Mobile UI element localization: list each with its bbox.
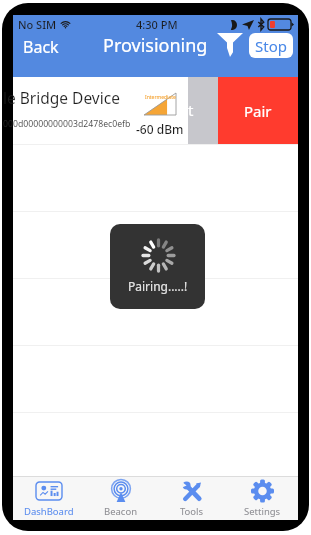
button[interactable] xyxy=(13,212,298,278)
staticText: le Bridge Device xyxy=(3,87,120,108)
button[interactable]: Settings xyxy=(227,477,298,520)
button[interactable] xyxy=(13,279,298,345)
staticText: Pairing.....! xyxy=(128,278,188,294)
staticText: Beacon xyxy=(104,505,138,518)
button[interactable]: t xyxy=(188,77,218,144)
staticText: DashBoard xyxy=(24,505,74,518)
staticText: Stop xyxy=(255,36,287,56)
staticText: 4:30 PM xyxy=(136,17,178,32)
button[interactable]: DashBoard xyxy=(13,477,85,520)
staticText: Tools xyxy=(180,505,204,518)
staticText: 000d00000000003d2478ec0efb xyxy=(3,118,131,130)
staticText: Intermediate xyxy=(145,94,176,101)
button[interactable]: Tools xyxy=(156,477,227,520)
button[interactable]: Filter xyxy=(215,31,245,59)
staticText: No SIM xyxy=(18,17,57,32)
button[interactable]: le Bridge Device xyxy=(13,77,188,144)
staticText: t xyxy=(188,100,194,120)
staticText: Provisioning xyxy=(103,33,208,58)
staticText: -60 dBm xyxy=(136,121,184,137)
button[interactable]: Back xyxy=(13,31,71,59)
staticText: Settings xyxy=(244,505,281,518)
staticText: Back xyxy=(23,36,59,54)
button[interactable]: Beacon xyxy=(85,477,156,520)
button[interactable]: Pair xyxy=(218,77,298,144)
staticText: Pair xyxy=(244,101,272,121)
button[interactable]: Stop xyxy=(249,33,293,58)
